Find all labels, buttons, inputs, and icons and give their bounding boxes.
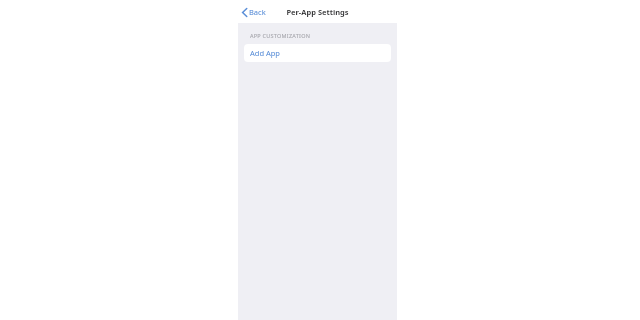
staticText: APP CUSTOMIZATION	[250, 32, 311, 39]
other: Back	[242, 8, 247, 17]
button[interactable]: Back	[238, 4, 272, 20]
staticText: Per-App Settings	[286, 7, 349, 17]
staticText: Back	[249, 7, 266, 17]
button[interactable]: Add App	[244, 44, 391, 62]
staticText: Add App	[250, 48, 280, 58]
